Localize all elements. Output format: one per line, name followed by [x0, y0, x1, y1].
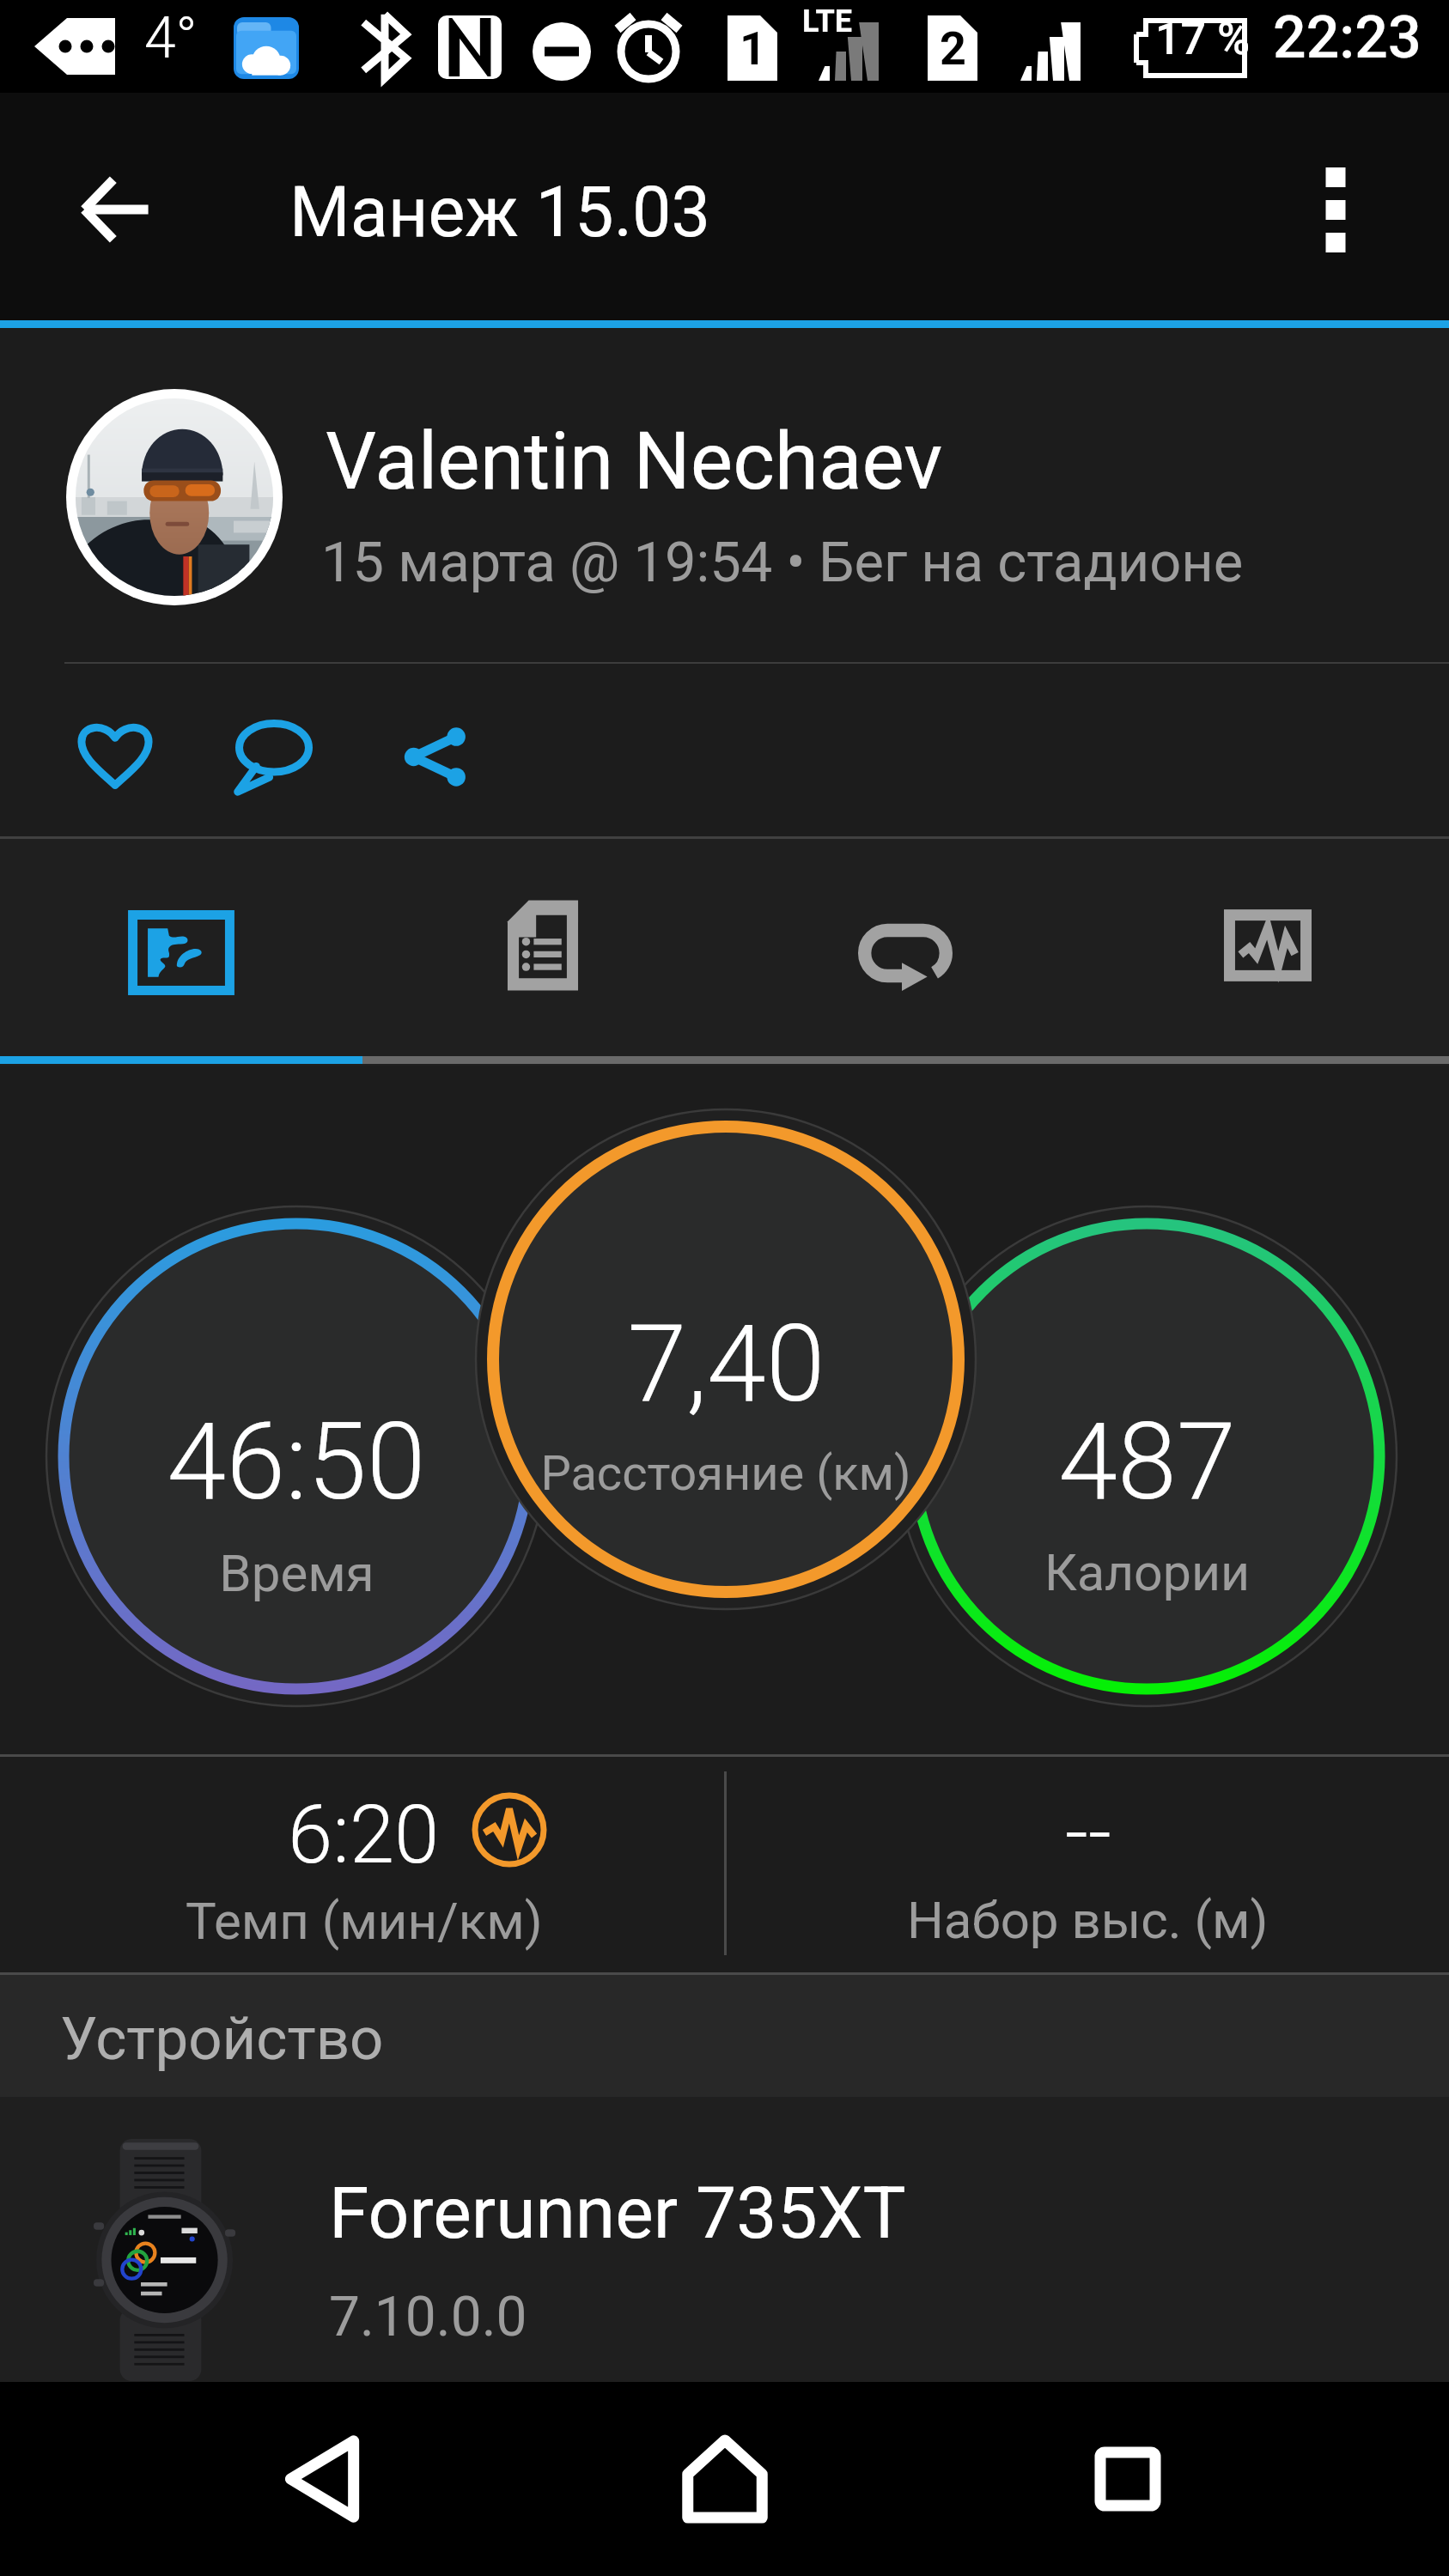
staticText: 46:50 — [167, 1400, 426, 1524]
button[interactable]: Back — [219, 2383, 425, 2575]
staticText: 7.10.0.0 — [329, 2285, 527, 2349]
staticText: 7,40 — [627, 1302, 825, 1426]
staticText: Манеж 15.03 — [289, 172, 711, 253]
staticText: 1 — [740, 21, 766, 76]
staticText: Калории — [1044, 1543, 1250, 1602]
button[interactable]: Map — [0, 839, 362, 1056]
staticText: Valentin Nechaev — [326, 415, 943, 508]
staticText: 17 % — [1155, 13, 1251, 65]
button[interactable]: Laps — [724, 839, 1087, 1056]
staticText: 2 — [940, 21, 966, 76]
staticText: Время — [219, 1543, 374, 1603]
staticText: Расстояние (км) — [540, 1445, 911, 1502]
button[interactable]: Темп (мин/км) 6:20 — [0, 1754, 724, 1972]
staticText: Forerunner 735XT — [329, 2171, 906, 2255]
button[interactable]: Набор выс. (м) — [727, 1754, 1449, 1972]
staticText: Темп (мин/км) — [186, 1891, 543, 1951]
staticText: 4° — [144, 5, 198, 71]
staticText: 22:23 — [1273, 3, 1422, 72]
button[interactable]: Back — [56, 149, 176, 270]
staticText: -- — [1065, 1785, 1111, 1880]
staticText: LTE — [802, 3, 853, 39]
button[interactable]: Like — [62, 702, 168, 809]
button[interactable]: Recent apps — [1025, 2383, 1231, 2575]
button[interactable]: Comment — [222, 704, 326, 807]
staticText: 6:20 — [288, 1788, 440, 1882]
staticText: 15 марта @ 19:54 • Бег на стадионе — [321, 530, 1244, 595]
button[interactable]: Forerunner 735XT — [0, 2097, 1449, 2382]
staticText: 487 — [1058, 1400, 1236, 1524]
button[interactable]: Home — [622, 2383, 828, 2575]
button[interactable]: Details — [362, 839, 724, 1056]
button[interactable]: Charts — [1087, 839, 1449, 1056]
staticText: Устройство — [60, 2004, 384, 2074]
staticText: Набор выс. (м) — [907, 1890, 1269, 1950]
button[interactable]: Share — [381, 703, 488, 810]
button[interactable]: More options — [1275, 146, 1396, 266]
